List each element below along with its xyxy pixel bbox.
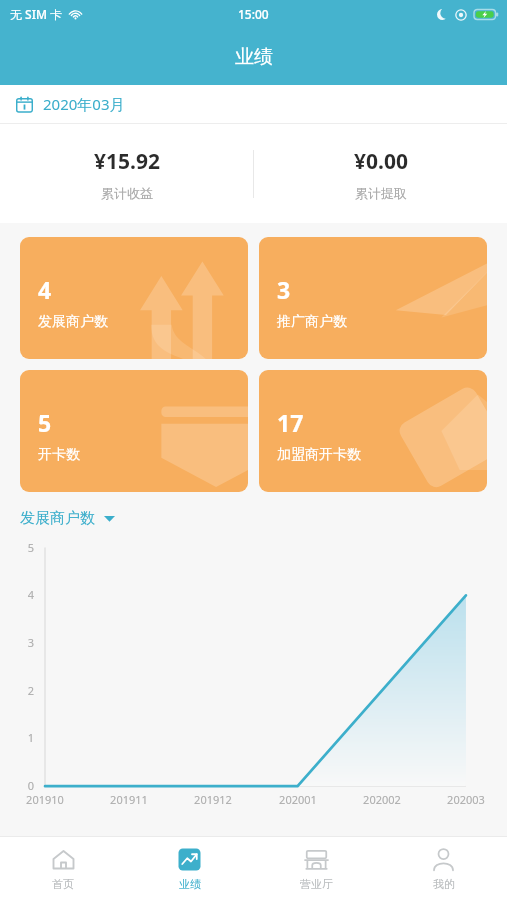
button[interactable]: 业绩 — [126, 837, 253, 900]
button[interactable]: ¥0.00 — [254, 147, 507, 201]
staticText: 累计提取 — [355, 185, 407, 201]
staticText: 首页 — [52, 877, 74, 891]
staticText: 202002 — [353, 792, 411, 807]
staticText: 累计收益 — [101, 185, 153, 201]
button[interactable]: 17 — [259, 370, 487, 492]
staticText: ¥0.00 — [354, 147, 408, 176]
button[interactable]: 发展商户数 — [20, 509, 121, 528]
staticText: 无 SIM 卡 — [10, 6, 63, 22]
staticText: ¥15.92 — [94, 147, 160, 176]
button[interactable]: 我的 — [380, 837, 507, 900]
staticText: 15:00 — [238, 6, 269, 22]
staticText: 3 — [277, 274, 291, 305]
staticText: 4 — [23, 587, 39, 602]
button[interactable]: 5 — [20, 370, 248, 492]
staticText: 201912 — [184, 792, 242, 807]
staticText: 业绩 — [235, 45, 273, 69]
button[interactable]: 4 — [20, 237, 248, 359]
staticText: 业绩 — [179, 877, 201, 891]
staticText: 发展商户数 — [38, 313, 108, 331]
staticText: 201911 — [100, 792, 158, 807]
staticText: 202001 — [269, 792, 327, 807]
staticText: 1 — [23, 730, 39, 745]
button[interactable]: 首页 — [0, 837, 126, 900]
staticText: 营业厅 — [300, 877, 333, 891]
staticText: 4 — [38, 274, 52, 305]
staticText: 5 — [38, 407, 52, 438]
staticText: 发展商户数 — [20, 509, 95, 528]
staticText: 推广商户数 — [277, 313, 347, 331]
button[interactable]: 3 — [259, 237, 487, 359]
staticText: 2020年03月 — [43, 94, 125, 114]
staticText: 17 — [277, 407, 304, 438]
staticText: 我的 — [433, 877, 455, 891]
staticText: 3 — [23, 635, 39, 650]
button[interactable]: 2020年03月 — [0, 85, 507, 123]
staticText: 201910 — [16, 792, 74, 807]
staticText: 202003 — [437, 792, 495, 807]
button[interactable]: ¥15.92 — [0, 147, 253, 201]
staticText: 开卡数 — [38, 446, 80, 464]
staticText: 加盟商开卡数 — [277, 446, 361, 464]
staticText: 2 — [23, 683, 39, 698]
button[interactable]: 营业厅 — [253, 837, 380, 900]
staticText: 0 — [23, 778, 39, 793]
staticText: 5 — [23, 540, 39, 555]
